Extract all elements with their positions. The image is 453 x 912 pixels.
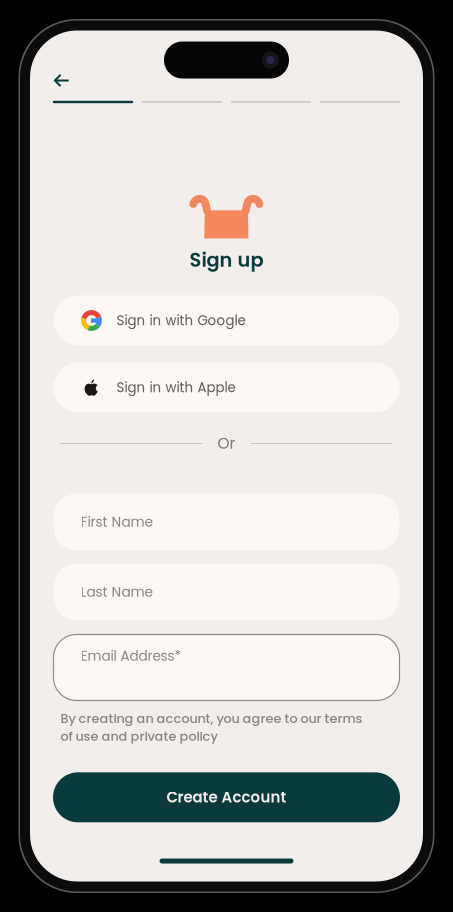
button[interactable]: Sign in with Apple xyxy=(53,362,399,412)
staticText: By creating an account, you agree to our… xyxy=(60,709,362,745)
staticText: Last Name xyxy=(80,582,153,602)
staticText: Sign in with Google xyxy=(116,311,245,330)
staticText: Sign up xyxy=(189,246,263,273)
button[interactable]: Create Account xyxy=(53,772,400,822)
button[interactable]: First Name xyxy=(53,493,399,550)
button[interactable]: Last Name xyxy=(53,563,399,620)
staticText: Create Account xyxy=(166,787,286,808)
staticText: Or xyxy=(217,433,235,454)
staticText: Email Address* xyxy=(80,646,181,665)
button[interactable]: Email Address* xyxy=(53,634,399,700)
staticText: Sign in with Apple xyxy=(116,378,235,397)
button[interactable]: Back xyxy=(53,69,89,91)
button[interactable]: Sign in with Google xyxy=(53,295,399,345)
staticText: First Name xyxy=(80,512,153,532)
